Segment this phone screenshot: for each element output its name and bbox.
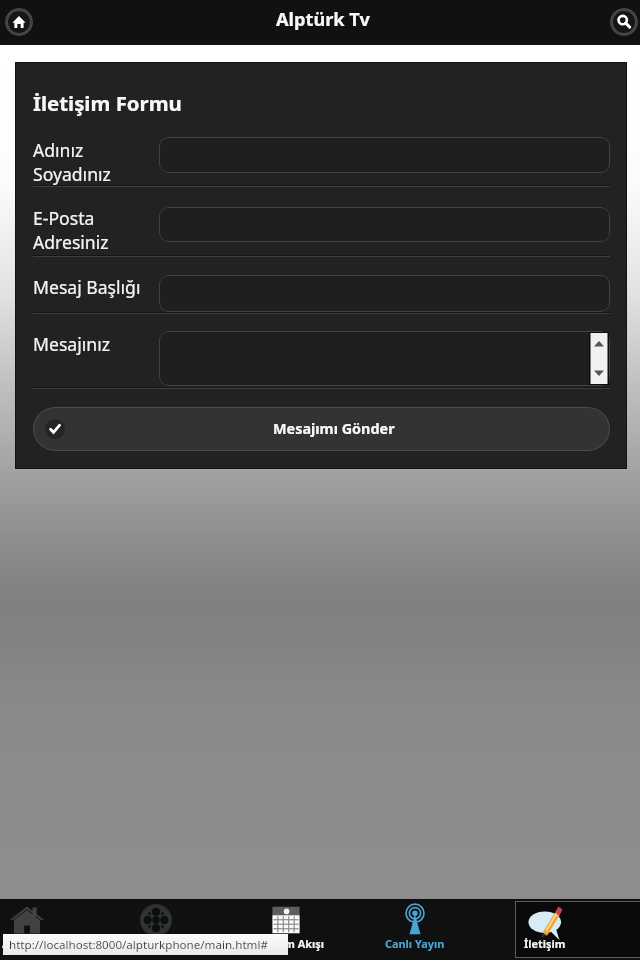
- button[interactable]: İletişim: [481, 899, 609, 960]
- button[interactable]: Mesajımı Gönder: [33, 407, 610, 451]
- staticText: Adınız: [33, 138, 84, 162]
- button[interactable]: [159, 207, 610, 242]
- staticText: Mesajınız: [33, 332, 110, 356]
- staticText: http://localhost:8000/alpturkphone/main.…: [9, 937, 268, 953]
- button[interactable]: Anasayfa: [0, 899, 91, 960]
- staticText: İletişim Formu: [33, 89, 182, 117]
- button[interactable]: [159, 331, 610, 386]
- button[interactable]: Search: [610, 8, 638, 36]
- staticText: Soyadınız: [33, 162, 111, 186]
- button[interactable]: Program Akışı: [222, 899, 350, 960]
- staticText: Program Akışı: [248, 936, 324, 951]
- button[interactable]: [159, 275, 610, 312]
- button[interactable]: Home: [5, 8, 33, 36]
- staticText: Canlı Yayın: [385, 936, 445, 951]
- staticText: Alptürk Tv: [276, 7, 370, 32]
- button[interactable]: Videolar: [92, 899, 220, 960]
- staticText: Videolar: [133, 936, 179, 951]
- button[interactable]: Canlı Yayın: [351, 899, 479, 960]
- staticText: Anasayfa: [2, 936, 53, 951]
- button[interactable]: [159, 137, 610, 173]
- staticText: E-Posta: [33, 206, 95, 230]
- staticText: İletişim: [524, 936, 566, 951]
- staticText: Mesaj Başlığı: [33, 275, 141, 299]
- staticText: Adresiniz: [33, 230, 109, 254]
- staticText: Mesajımı Gönder: [273, 419, 395, 439]
